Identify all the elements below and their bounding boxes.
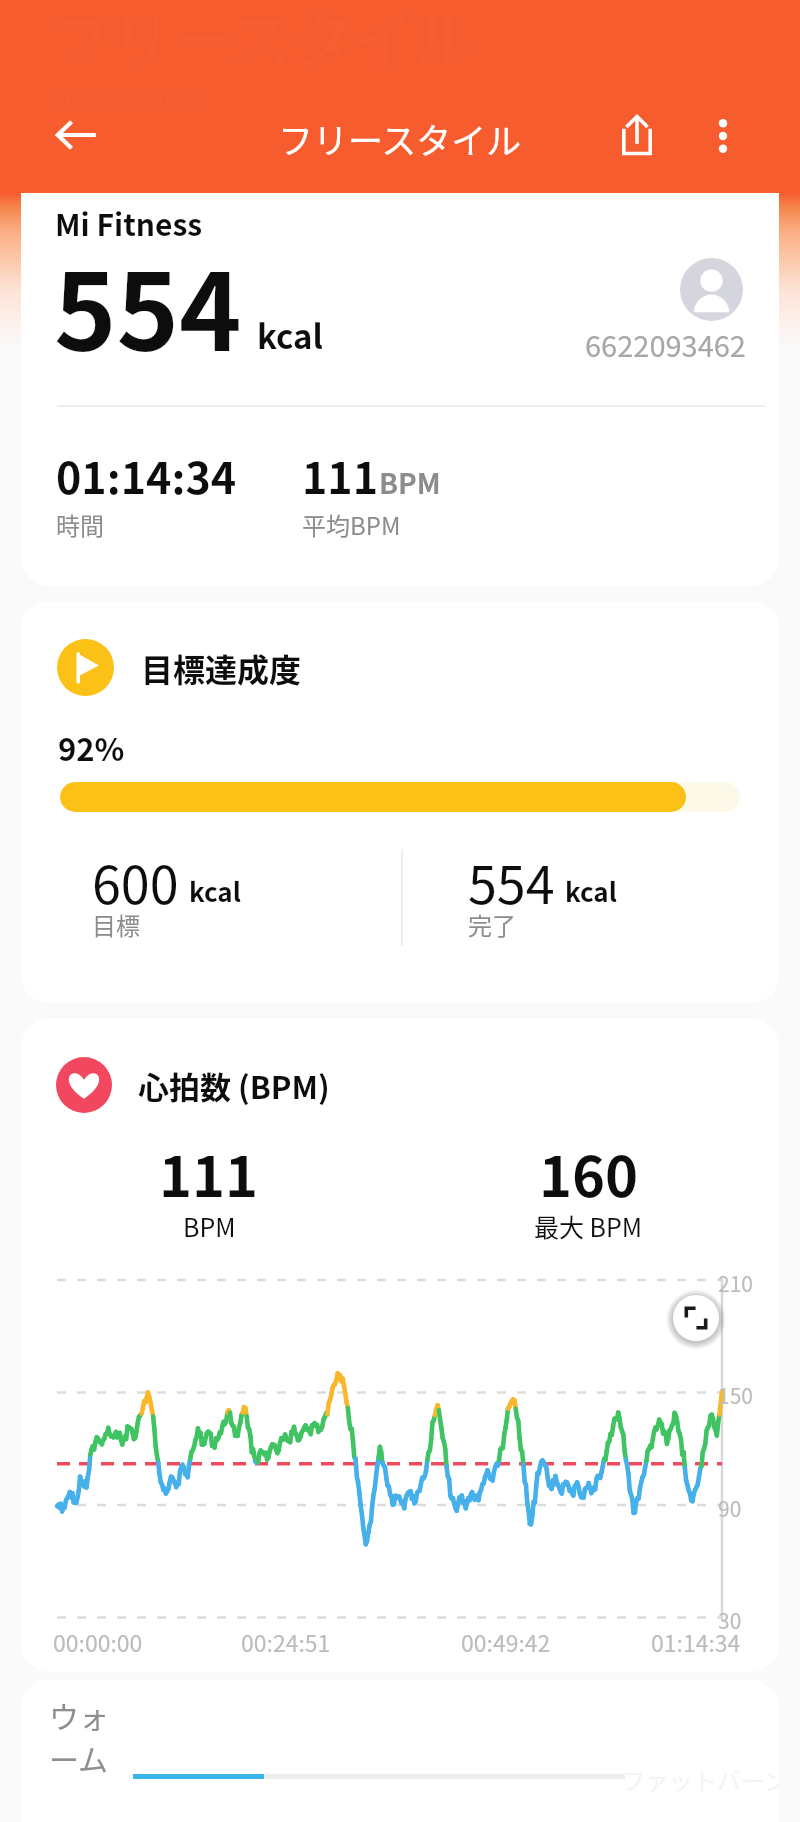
staticText: 111 <box>302 444 379 506</box>
staticText: 目標達成度 <box>141 645 302 691</box>
button[interactable]: More options <box>681 94 765 178</box>
staticText: 00:00:00 <box>53 1625 143 1658</box>
staticText: ーム <box>49 1736 109 1779</box>
staticText: kcal <box>565 872 617 910</box>
staticText: 554 <box>468 844 555 919</box>
staticText: 90 <box>718 1493 742 1523</box>
staticText: 111 <box>159 1132 259 1213</box>
staticText: 01:14:34 <box>651 1625 741 1658</box>
button[interactable]: Expand chart <box>673 1295 719 1341</box>
staticText: BPM <box>183 1208 236 1244</box>
staticText: 6622093462 <box>585 323 746 365</box>
staticText: Mi Fitness <box>55 201 203 244</box>
staticText: 150 <box>718 1380 753 1410</box>
staticText: 00:24:51 <box>241 1625 331 1658</box>
staticText: 554 <box>54 228 242 381</box>
staticText: 時間 <box>56 507 104 542</box>
staticText: 210 <box>718 1268 753 1298</box>
staticText: 01:14:34 <box>56 444 237 506</box>
staticText: BPM <box>379 462 441 503</box>
staticText: フリースタイル <box>278 113 522 164</box>
button[interactable]: Back <box>34 93 118 177</box>
staticText: 92% <box>58 725 125 770</box>
staticText: kcal <box>189 872 241 910</box>
staticText: 30 <box>718 1605 742 1635</box>
staticText: 完了 <box>468 907 516 942</box>
staticText: kcal <box>257 311 323 359</box>
staticText: 最大 BPM <box>534 1208 643 1244</box>
staticText: 目標 <box>92 907 140 942</box>
button[interactable]: Share <box>595 93 679 177</box>
staticText: 600 <box>92 844 179 919</box>
staticText: ファットバーン <box>621 1762 779 1797</box>
staticText: 160 <box>539 1132 639 1213</box>
staticText: 心拍数 (BPM) <box>138 1063 330 1108</box>
staticText: 00:49:42 <box>461 1625 551 1658</box>
staticText: ウォ <box>49 1693 109 1736</box>
staticText: 平均BPM <box>302 507 401 542</box>
